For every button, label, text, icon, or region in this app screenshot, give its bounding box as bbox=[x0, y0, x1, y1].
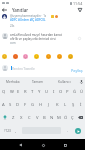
staticText: S bbox=[9, 102, 12, 108]
button[interactable]: Shift bbox=[0, 111, 9, 124]
button[interactable]: O bbox=[57, 85, 64, 98]
staticText: Yanıtlar bbox=[12, 7, 29, 13]
button[interactable]: K bbox=[53, 98, 61, 111]
staticText: G bbox=[31, 102, 35, 108]
button[interactable]: More options bbox=[76, 35, 82, 41]
staticText: Ü bbox=[80, 89, 84, 95]
button[interactable]: Voice input bbox=[77, 77, 85, 86]
button[interactable]: Tamam bbox=[25, 77, 51, 86]
staticText: O bbox=[59, 89, 63, 95]
button[interactable]: Emoji suggestion bbox=[2, 54, 7, 59]
button[interactable]: C bbox=[25, 111, 33, 124]
button[interactable]: Merhaba bbox=[0, 77, 25, 86]
button[interactable]: Ü bbox=[78, 85, 85, 98]
button[interactable]: Send bbox=[71, 123, 84, 139]
button[interactable]: A bbox=[0, 98, 7, 111]
staticText: D bbox=[16, 102, 20, 108]
staticText: ofirlik ve paylaşı ekiclerinizd cirsi bbox=[10, 37, 56, 41]
button[interactable]: S bbox=[7, 98, 14, 111]
button[interactable]: N bbox=[48, 111, 55, 124]
staticText: Yanıtını Tweetle bbox=[12, 67, 35, 71]
staticText: Tamam bbox=[32, 80, 44, 84]
button[interactable]: Emoji suggestion bbox=[13, 54, 18, 59]
button[interactable]: Kullanıcı bbox=[51, 77, 77, 86]
button[interactable]: Ş bbox=[69, 98, 77, 111]
button[interactable]: M bbox=[55, 111, 62, 124]
staticText: T bbox=[31, 89, 34, 95]
button[interactable]: L bbox=[61, 98, 69, 111]
button[interactable]: E bbox=[15, 85, 22, 98]
staticText: ?123 bbox=[4, 129, 11, 133]
button[interactable]: R bbox=[22, 85, 29, 98]
staticText: J bbox=[48, 102, 50, 108]
button[interactable]: Sort replies bbox=[76, 6, 84, 13]
button[interactable]: P bbox=[64, 85, 71, 98]
button[interactable]: Q bbox=[0, 85, 8, 98]
button[interactable]: Ç bbox=[69, 111, 76, 124]
button[interactable]: Paylaş bbox=[68, 66, 85, 75]
button[interactable]: I bbox=[50, 85, 57, 98]
button[interactable]: X bbox=[17, 111, 25, 124]
button[interactable]: J bbox=[45, 98, 53, 111]
button[interactable]: B bbox=[41, 111, 48, 124]
staticText: 11:54 bbox=[73, 1, 83, 6]
button[interactable]: T bbox=[29, 85, 36, 98]
button[interactable]: Z bbox=[9, 111, 17, 124]
staticText: V bbox=[36, 115, 39, 121]
staticText: Ş bbox=[72, 102, 75, 108]
staticText: Ç bbox=[71, 115, 74, 121]
staticText: İ bbox=[80, 102, 82, 108]
staticText: Z bbox=[12, 115, 15, 121]
staticText: Kullanıcı bbox=[58, 80, 71, 84]
staticText: I bbox=[53, 89, 55, 95]
staticText: B bbox=[43, 115, 46, 121]
button[interactable]: Home bbox=[37, 139, 49, 150]
button[interactable]: F bbox=[21, 98, 29, 111]
button[interactable]: Y bbox=[36, 85, 43, 98]
staticText: F bbox=[24, 102, 27, 108]
button[interactable]: W bbox=[8, 85, 15, 98]
button[interactable]: Backspace bbox=[76, 111, 85, 124]
button[interactable]: V bbox=[33, 111, 41, 124]
staticText: Paylaş bbox=[71, 68, 83, 73]
staticText: P bbox=[66, 89, 69, 95]
staticText: Ö bbox=[64, 115, 68, 121]
staticText: . bbox=[67, 128, 69, 134]
staticText: Q bbox=[2, 89, 6, 95]
button[interactable]: , bbox=[12, 123, 20, 139]
button[interactable]: G bbox=[29, 98, 37, 111]
staticText: Ğ bbox=[73, 89, 77, 95]
button[interactable]: H bbox=[37, 98, 45, 111]
staticText: C bbox=[28, 115, 31, 121]
staticText: 23s bbox=[10, 24, 15, 28]
button[interactable]: Ğ bbox=[71, 85, 78, 98]
button[interactable]: Back bbox=[0, 6, 9, 13]
button[interactable]: Ö bbox=[62, 111, 69, 124]
staticText: R bbox=[24, 89, 27, 95]
staticText: Y bbox=[38, 89, 41, 95]
button[interactable]: İ bbox=[77, 98, 85, 111]
button[interactable]: D bbox=[14, 98, 21, 111]
button[interactable]: Emoji suggestion bbox=[23, 54, 28, 59]
staticText: M bbox=[57, 115, 61, 121]
staticText: W bbox=[10, 89, 14, 95]
button[interactable]: Emoji suggestion bbox=[34, 54, 39, 59]
staticText: , bbox=[15, 128, 17, 134]
button[interactable]: Back bbox=[14, 139, 26, 150]
button[interactable]: Recent apps bbox=[59, 139, 71, 150]
staticText: H bbox=[39, 102, 43, 108]
button[interactable]: Emoji suggestion bbox=[68, 54, 73, 59]
staticText: #DFC #Ünlem #İÇ #DFCEL bbox=[10, 18, 46, 22]
staticText: com bbox=[10, 41, 16, 45]
staticText: @uyemuhammetaydin · 1s bbox=[10, 14, 47, 18]
staticText: N bbox=[50, 115, 54, 121]
button[interactable]: Emoji suggestion bbox=[46, 54, 51, 59]
staticText: K bbox=[56, 102, 59, 108]
staticText: Merhaba bbox=[6, 80, 20, 84]
button[interactable]: ?123 bbox=[0, 123, 15, 139]
staticText: L bbox=[64, 102, 67, 108]
button[interactable]: U bbox=[43, 85, 50, 98]
button[interactable]: Emoji suggestion bbox=[57, 54, 62, 59]
